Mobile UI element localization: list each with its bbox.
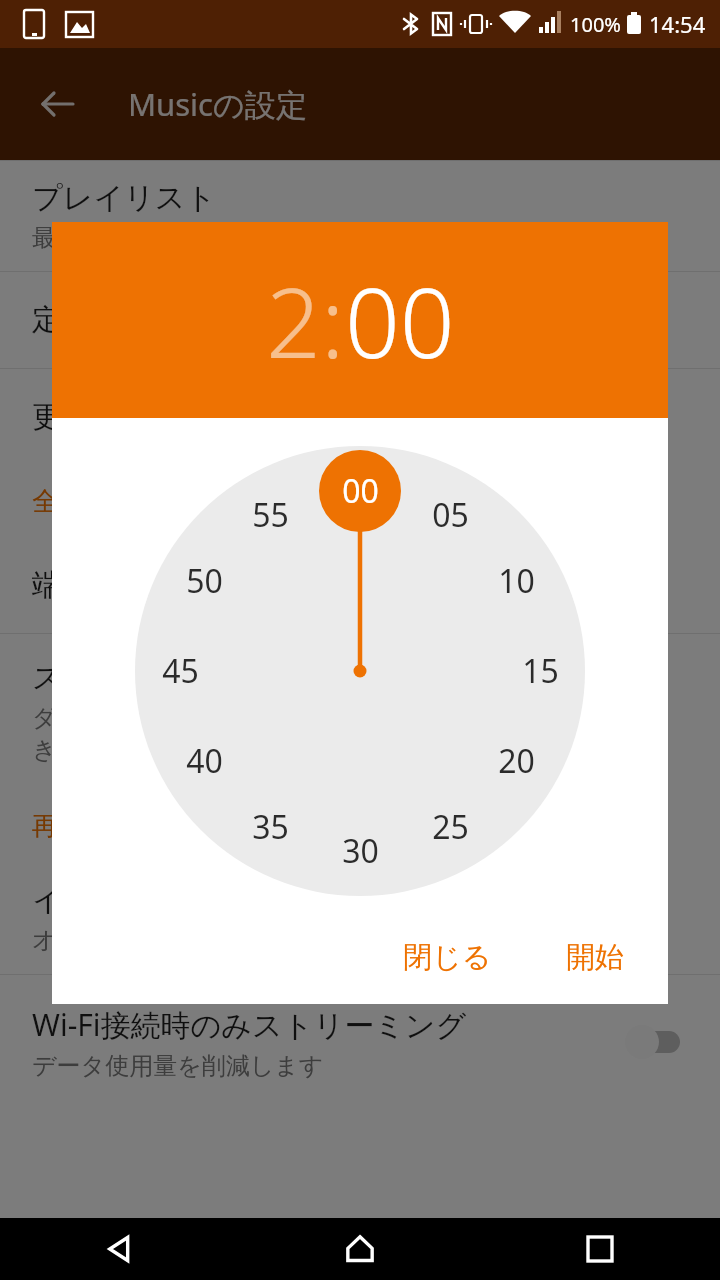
button[interactable]: Wi-Fi接続時のみストリーミング xyxy=(0,975,720,1109)
button[interactable]: 05 xyxy=(414,491,486,539)
button[interactable]: ストレージ xyxy=(0,634,720,790)
staticText: ダウンロード先を選択で きます xyxy=(32,703,300,765)
staticText: 50 xyxy=(186,559,223,603)
button[interactable]: 30 xyxy=(324,827,396,875)
button[interactable]: 35 xyxy=(234,803,306,851)
staticText: 00 xyxy=(345,255,455,386)
staticText: 25 xyxy=(432,805,469,849)
staticText: Wi-Fi接続時のみストリーミング xyxy=(32,1004,467,1045)
staticText: 最新の情報に更新 xyxy=(32,223,226,253)
staticText: 定期的な更新 xyxy=(32,301,213,339)
staticText: 00 xyxy=(342,469,379,513)
staticText: 15 xyxy=(522,649,559,693)
button[interactable]: 端末内の音楽 xyxy=(0,537,720,633)
staticText: 2 xyxy=(266,255,321,386)
staticText: Musicの設定 xyxy=(128,83,307,125)
staticText: データ使用量を削減します xyxy=(32,1051,324,1081)
staticText: イコライザー xyxy=(32,881,216,919)
staticText: 45 xyxy=(162,649,199,693)
staticText: 14:54 xyxy=(649,9,706,39)
button[interactable]: 55 xyxy=(234,491,306,539)
button[interactable]: 10 xyxy=(480,557,552,605)
button[interactable]: Back xyxy=(30,76,86,132)
button[interactable]: 00 xyxy=(345,255,455,386)
button[interactable]: 閉じる xyxy=(383,927,512,988)
button[interactable]: 2 xyxy=(266,255,321,386)
button[interactable]: Home xyxy=(315,1218,405,1280)
staticText: 端末内の音楽 xyxy=(32,566,213,604)
staticText: : xyxy=(321,255,345,386)
staticText: 全般 xyxy=(32,485,84,518)
button[interactable]: イコライザー xyxy=(0,862,720,974)
button[interactable]: 定期的な更新 xyxy=(0,272,720,368)
button[interactable]: 25 xyxy=(414,803,486,851)
staticText: プレイリスト xyxy=(32,179,217,217)
button[interactable]: Back xyxy=(75,1218,165,1280)
button[interactable]: 更新頻度 xyxy=(0,369,720,465)
button[interactable]: 45 xyxy=(144,647,216,695)
button[interactable]: プレイリスト xyxy=(0,161,720,271)
staticText: 30 xyxy=(342,829,379,873)
staticText: 再生 xyxy=(32,810,84,843)
staticText: 05 xyxy=(432,493,469,537)
button[interactable]: Recent apps xyxy=(555,1218,645,1280)
staticText: オーディオ設定を調整する xyxy=(32,925,324,955)
staticText: 55 xyxy=(252,493,289,537)
staticText: 35 xyxy=(252,805,289,849)
button[interactable]: 15 xyxy=(504,647,576,695)
staticText: 40 xyxy=(186,739,223,783)
staticText: 20 xyxy=(498,739,535,783)
staticText: 更新頻度 xyxy=(32,398,152,436)
staticText: 10 xyxy=(498,559,535,603)
staticText: 100% xyxy=(570,11,621,38)
button[interactable]: 20 xyxy=(480,737,552,785)
staticText: ストレージ xyxy=(32,659,185,697)
staticText: 開始 xyxy=(566,939,624,976)
staticText: 閉じる xyxy=(403,939,492,976)
button[interactable]: 40 xyxy=(168,737,240,785)
button[interactable]: 00 xyxy=(324,467,396,515)
button[interactable]: 50 xyxy=(168,557,240,605)
button[interactable]: 開始 xyxy=(546,927,644,988)
